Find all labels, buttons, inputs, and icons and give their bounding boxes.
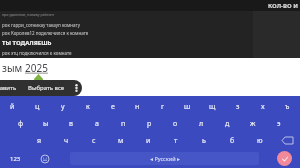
staticText: с — [92, 136, 96, 146]
button[interactable]: 123 — [0, 149, 30, 168]
staticText: ф — [18, 119, 24, 129]
other: Selection handle — [34, 74, 43, 83]
button[interactable]: п — [110, 115, 136, 132]
button[interactable]: м — [107, 132, 134, 149]
button[interactable]: ю — [246, 132, 274, 149]
button[interactable]: ь — [190, 132, 218, 149]
staticText: ш — [184, 102, 191, 112]
button[interactable]: ш — [175, 98, 200, 115]
button[interactable]: ч — [53, 132, 80, 149]
staticText: ъ — [285, 102, 290, 112]
staticText: рок Королев12 подключился к комнате — [2, 30, 89, 36]
button[interactable]: б — [218, 132, 246, 149]
button[interactable]: в — [58, 115, 84, 132]
button[interactable]: л — [188, 115, 214, 132]
button[interactable]: Enter — [277, 151, 292, 166]
staticText: н — [135, 102, 140, 112]
staticText: Выбрать все — [28, 84, 65, 92]
staticText: м — [118, 136, 124, 146]
staticText: р — [147, 119, 152, 129]
staticText: б — [230, 136, 235, 146]
staticText: ц — [35, 102, 40, 112]
staticText: у — [61, 102, 65, 112]
staticText: ◂ Русский ▸ — [150, 155, 180, 162]
staticText: д — [225, 119, 230, 129]
staticText: я — [37, 136, 42, 146]
staticText: л — [199, 119, 204, 129]
staticText: в — [69, 119, 73, 129]
button[interactable]: Вставить — [0, 80, 23, 96]
staticText: 2025 — [25, 61, 48, 75]
button[interactable]: я — [26, 132, 53, 149]
staticText: о — [173, 119, 178, 129]
staticText: а — [95, 119, 99, 129]
button[interactable]: ы — [33, 115, 58, 132]
button[interactable]: к — [75, 98, 100, 115]
button[interactable]: More options — [70, 80, 82, 96]
staticText: э — [277, 119, 281, 129]
staticText: х — [261, 102, 265, 112]
button[interactable]: а — [84, 115, 110, 132]
button[interactable]: г — [150, 98, 175, 115]
staticText: й — [10, 102, 15, 112]
button[interactable]: Выбрать все — [23, 80, 70, 96]
staticText: рок этц подключился к комнате — [2, 50, 72, 56]
staticText: КОЛ-ВО И — [268, 2, 298, 10]
staticText: ж — [250, 119, 256, 129]
staticText: щ — [209, 102, 216, 112]
button[interactable]: з — [225, 98, 250, 115]
staticText: и — [146, 136, 151, 146]
button[interactable]: е — [100, 98, 125, 115]
button[interactable]: й — [0, 98, 25, 115]
staticText: з — [236, 102, 240, 112]
staticText: ы — [43, 119, 49, 129]
staticText: зым — [2, 61, 25, 75]
button[interactable]: у — [50, 98, 75, 115]
staticText: п — [121, 119, 126, 129]
staticText: к — [86, 102, 90, 112]
button[interactable]: ц — [25, 98, 50, 115]
staticText: ТЫ ТОДАЛЯЕШЬ — [2, 39, 52, 47]
button[interactable]: т — [162, 132, 190, 149]
button[interactable]: о — [162, 115, 188, 132]
button[interactable]: Backspace — [274, 132, 300, 149]
button[interactable]: э — [266, 115, 292, 132]
button[interactable]: ж — [240, 115, 266, 132]
staticText: г — [161, 102, 165, 112]
button[interactable]: ф — [8, 115, 33, 132]
button[interactable]: ◂ Русский ▸ — [70, 152, 259, 165]
staticText: Вставить — [0, 84, 17, 92]
staticText: ч — [64, 136, 69, 146]
staticText: е — [111, 102, 115, 112]
staticText: 123 — [10, 155, 21, 163]
staticText: т — [174, 136, 178, 146]
button[interactable]: ъ — [275, 98, 300, 115]
button[interactable]: с — [80, 132, 107, 149]
button[interactable]: щ — [200, 98, 225, 115]
staticText: ю — [257, 136, 263, 146]
button[interactable]: х — [250, 98, 275, 115]
staticText: ь — [202, 136, 206, 146]
button[interactable]: р — [136, 115, 162, 132]
button[interactable]: и — [134, 132, 162, 149]
button[interactable]: Emoji — [30, 149, 60, 168]
staticText: рок гарри_сотникау такауп комнату — [2, 22, 80, 28]
button[interactable]: д — [214, 115, 240, 132]
staticText: при удалении, покажу рейтинг — [2, 12, 55, 17]
button[interactable]: н — [125, 98, 150, 115]
